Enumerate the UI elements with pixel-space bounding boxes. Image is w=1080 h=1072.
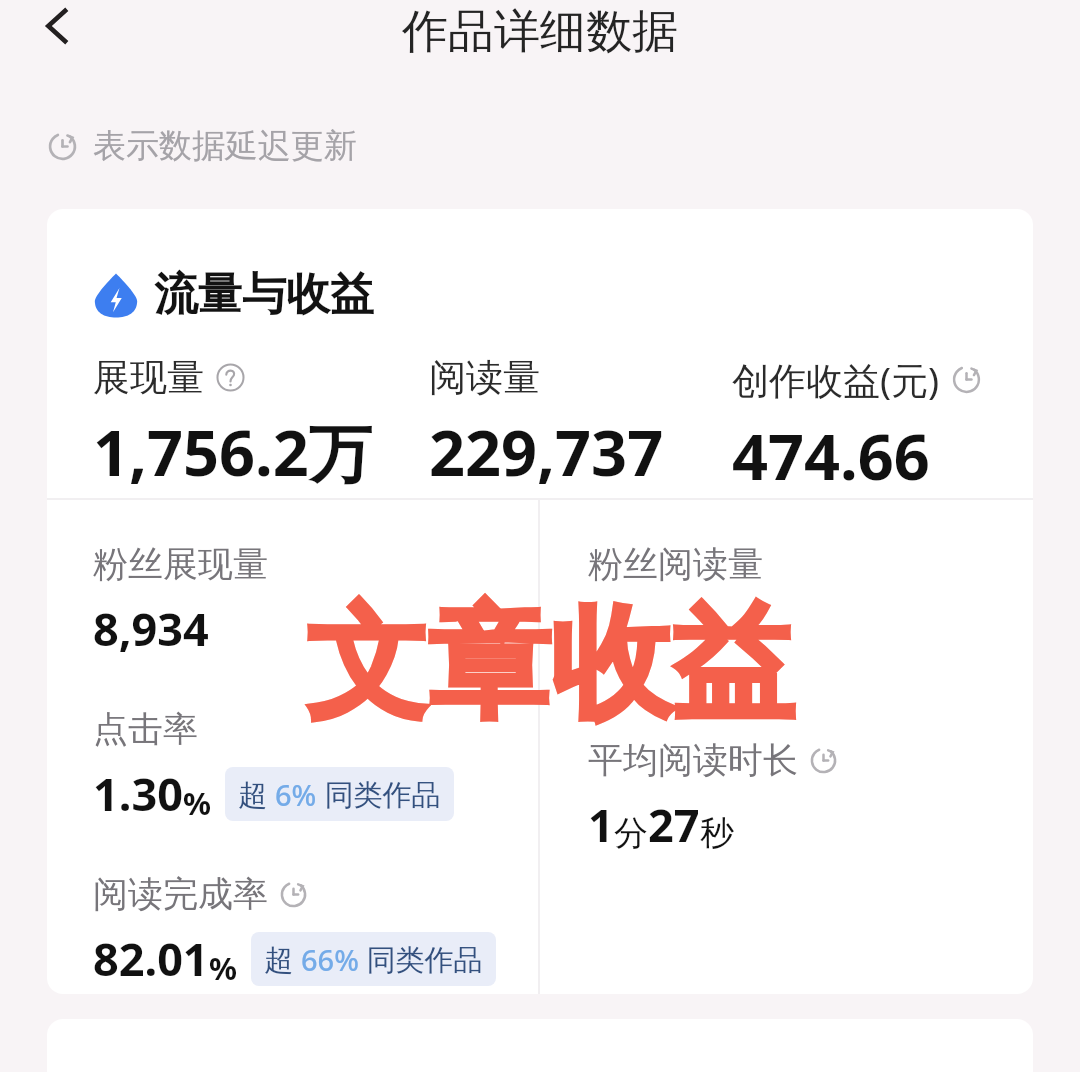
staticText: 粉丝阅读量 [588,542,763,586]
button[interactable]: 粉丝展现量 [93,542,268,659]
staticText: 展现量 [93,354,204,401]
staticText: 点击率 [93,707,198,751]
staticText: 474.66 [732,413,930,498]
staticText: 流量与收益 [154,267,374,322]
button[interactable]: 流量与收益 [93,267,374,322]
staticText: 同类作品 [317,774,441,814]
staticText: 阅读量 [429,354,540,401]
staticText: 66% [301,940,359,979]
staticText: 平均阅读时长 [588,738,798,782]
staticText: 229,737 [429,409,664,495]
staticText: 作品详细数据 [402,3,678,61]
staticText: 超 [238,774,275,814]
staticText: % [183,782,211,824]
staticText: 分 [614,812,648,855]
staticText: 6% [275,775,317,814]
staticText: 阅读完成率 [93,872,268,916]
staticText: 27 [648,794,700,855]
staticText: 文章收益 [306,588,794,742]
button[interactable]: 平均阅读时长 [588,738,838,855]
button[interactable]: 粉丝阅读量 [588,542,763,586]
staticText: 同类作品 [359,939,483,979]
button[interactable]: Back [20,0,96,57]
staticText: 创作收益(元) [732,354,940,405]
staticText: 表示数据延迟更新 [93,125,357,167]
staticText: 秒 [700,812,734,855]
button[interactable]: 展现量 [93,354,372,495]
button[interactable]: 点击率 [93,707,454,824]
staticText: 1,756.2万 [93,409,372,495]
staticText: 1 [588,794,614,855]
staticText: 8,934 [93,598,209,659]
button[interactable]: 阅读量 [429,354,664,495]
button[interactable]: 创作收益(元) [732,354,982,498]
staticText: % [209,947,237,989]
button[interactable]: 阅读完成率 [93,872,496,989]
staticText: 粉丝展现量 [93,542,268,586]
staticText: 超 [264,939,301,979]
staticText: 1.30 [93,763,183,824]
staticText: 82.01 [93,928,209,989]
